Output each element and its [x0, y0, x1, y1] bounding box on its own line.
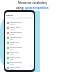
staticText: 8 due — [10, 33, 14, 35]
button[interactable]: French verbs — [5, 25, 34, 30]
staticText: Spanish basics — [10, 21, 22, 23]
button[interactable]: Korean hangul — [5, 45, 34, 50]
staticText: German nouns — [10, 31, 22, 33]
staticText: spaced repetition — [25, 6, 49, 10]
staticText: done — [10, 68, 14, 70]
staticText: Decks — [6, 13, 14, 16]
button[interactable]: Italian food — [5, 40, 34, 45]
staticText: French verbs — [10, 26, 21, 28]
staticText: done — [10, 43, 14, 45]
staticText: Polish words — [10, 66, 21, 68]
staticText: done — [10, 38, 14, 40]
staticText: using — [16, 6, 25, 10]
staticText: done — [10, 53, 14, 55]
button[interactable]: Latin roots — [5, 50, 34, 55]
staticText: Korean hangul — [10, 46, 22, 48]
staticText: Greek letters — [10, 56, 21, 58]
staticText: Dutch phrases — [10, 61, 22, 63]
staticText: done — [10, 48, 14, 50]
button[interactable]: Japanese kanji — [5, 35, 34, 40]
staticText: done — [10, 63, 14, 65]
button[interactable]: Dutch phrases — [5, 60, 34, 65]
button[interactable]: Spanish basics — [5, 20, 34, 25]
staticText: 24 due — [10, 23, 15, 25]
button[interactable]: Greek letters — [5, 55, 34, 60]
button[interactable]: German nouns — [5, 30, 34, 35]
staticText: Italian food — [10, 41, 20, 43]
staticText: 12 due — [10, 28, 15, 30]
staticText: Latin roots — [10, 51, 19, 53]
staticText: Memorize vocabulary — [18, 1, 47, 5]
staticText: done — [10, 58, 14, 60]
button[interactable]: Polish words — [5, 65, 34, 70]
staticText: Japanese kanji — [10, 36, 22, 38]
